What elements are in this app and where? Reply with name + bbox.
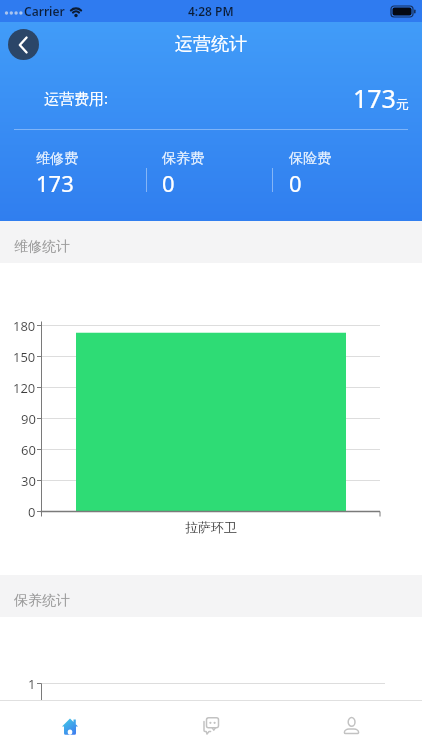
staticText: 120: [13, 379, 36, 397]
staticText: 元: [396, 96, 409, 112]
staticText: 30: [21, 472, 36, 490]
staticText: 60: [21, 441, 36, 459]
staticText: 0: [28, 503, 36, 521]
staticText: 180: [13, 317, 36, 335]
staticText: 0: [162, 168, 175, 198]
staticText: 运营统计: [175, 33, 247, 56]
staticText: 维修费: [36, 150, 78, 168]
staticText: 保险费: [289, 150, 331, 168]
staticText: 保养费: [162, 150, 204, 168]
staticText: 运营费用:: [44, 88, 109, 108]
button[interactable]: [8, 29, 39, 60]
staticText: Carrier: [24, 3, 65, 19]
staticText: 1: [28, 675, 36, 693]
button[interactable]: [281, 701, 422, 750]
staticText: 拉萨环卫: [0, 519, 422, 535]
staticText: 150: [13, 348, 36, 366]
staticText: 173: [36, 168, 74, 198]
staticText: 保养统计: [14, 592, 70, 610]
button[interactable]: [0, 701, 140, 750]
button[interactable]: [140, 701, 281, 750]
staticText: 4:28 PM: [188, 3, 234, 19]
staticText: 173: [353, 81, 396, 115]
staticText: 0: [289, 168, 302, 198]
staticText: 90: [21, 410, 36, 428]
staticText: 维修统计: [14, 238, 70, 256]
